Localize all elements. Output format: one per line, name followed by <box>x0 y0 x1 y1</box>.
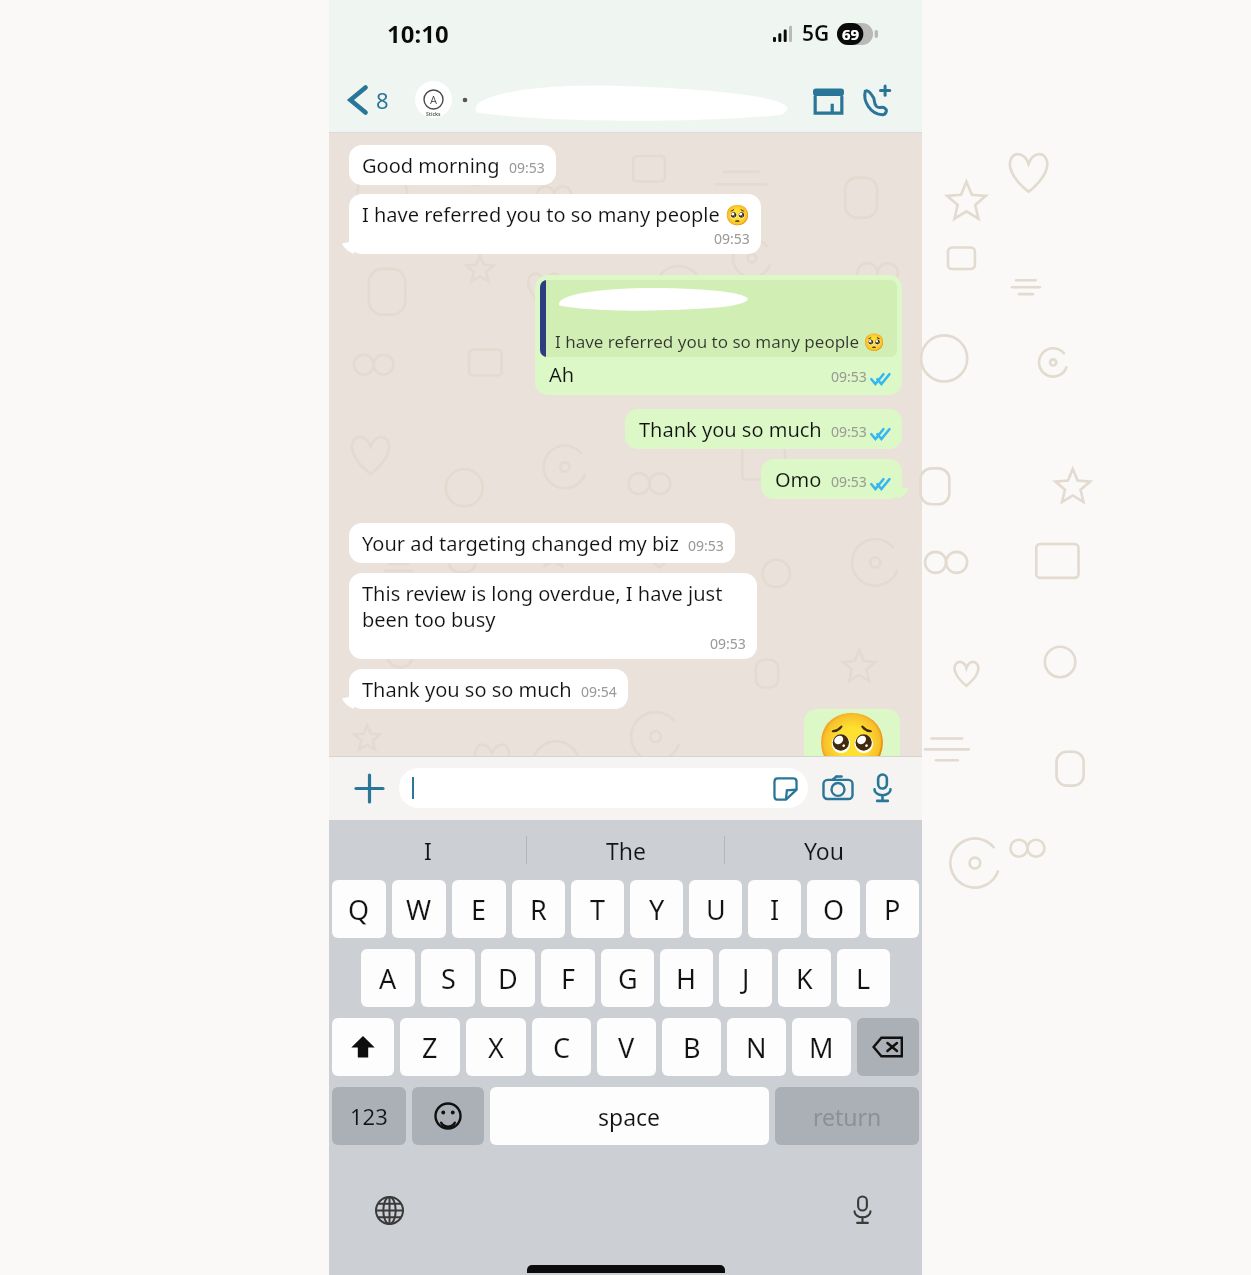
button[interactable]: F <box>541 949 595 1007</box>
button[interactable]: Attach <box>347 766 391 810</box>
button[interactable]: Thank you so much <box>625 409 902 449</box>
staticText: Ah <box>549 361 575 388</box>
button[interactable]: I have referred you to so many people 🥺 <box>535 275 902 395</box>
button[interactable]: D <box>481 949 535 1007</box>
button[interactable]: A <box>361 949 415 1007</box>
staticText: X <box>488 1029 504 1066</box>
staticText: 8 <box>376 85 389 115</box>
staticText: Good morning <box>362 152 500 179</box>
staticText: P <box>884 891 901 928</box>
button[interactable]: Shift <box>332 1018 394 1076</box>
button[interactable]: N <box>727 1018 786 1076</box>
button[interactable]: Emoji <box>412 1087 484 1145</box>
button[interactable]: Your ad targeting changed my biz <box>349 523 735 563</box>
staticText: 10:10 <box>387 17 449 50</box>
staticText: Sticks <box>426 111 441 118</box>
staticText: Q <box>348 891 370 928</box>
staticText: 09:53 <box>710 634 746 653</box>
button[interactable]: Stickers <box>399 768 808 808</box>
button[interactable]: Contact avatar <box>415 81 452 118</box>
staticText: space <box>598 1101 661 1132</box>
button[interactable]: space <box>490 1087 769 1145</box>
staticText: You <box>804 835 844 866</box>
staticText: Thank you so much <box>639 416 822 443</box>
button[interactable]: This review is long overdue, I have just… <box>349 573 757 659</box>
staticText: J <box>742 960 750 997</box>
button[interactable]: Back, 8 unread <box>343 79 395 121</box>
staticText: L <box>856 960 871 997</box>
staticText: N <box>746 1029 767 1066</box>
staticText: 123 <box>350 1101 388 1131</box>
button[interactable]: V <box>597 1018 656 1076</box>
staticText: M <box>809 1029 834 1066</box>
staticText: I have referred you to so many people 🥺 <box>555 330 885 353</box>
staticText: 69 <box>842 24 860 44</box>
button[interactable]: Z <box>400 1018 460 1076</box>
staticText: H <box>676 960 697 997</box>
button[interactable]: J <box>719 949 772 1007</box>
staticText: E <box>471 891 487 928</box>
button[interactable]: K <box>778 949 831 1007</box>
button[interactable]: T <box>571 880 624 938</box>
staticText: I <box>424 835 432 866</box>
button[interactable]: X <box>466 1018 526 1076</box>
staticText: D <box>498 960 518 997</box>
button[interactable]: O <box>807 880 860 938</box>
staticText: Z <box>422 1029 438 1066</box>
staticText: O <box>823 891 845 928</box>
button[interactable]: Camera <box>816 766 860 810</box>
staticText: R <box>530 891 547 928</box>
button[interactable]: 🥺 <box>804 709 900 756</box>
button[interactable]: C <box>532 1018 591 1076</box>
staticText: I have referred you to so many people 🥺 <box>362 201 750 228</box>
button[interactable]: E <box>452 880 506 938</box>
button[interactable]: You <box>725 820 922 880</box>
button[interactable]: I <box>329 820 526 880</box>
button[interactable]: W <box>392 880 446 938</box>
button[interactable]: Dictate <box>840 1188 884 1232</box>
button[interactable]: Stickers <box>768 771 802 805</box>
staticText: 09:54 <box>581 682 617 701</box>
staticText: I <box>770 891 780 928</box>
button[interactable]: The <box>527 820 724 880</box>
staticText: G <box>618 960 638 997</box>
button[interactable]: Voice message <box>860 766 904 810</box>
staticText: F <box>561 960 576 997</box>
button[interactable]: G <box>601 949 654 1007</box>
button[interactable]: U <box>689 880 742 938</box>
staticText: Y <box>649 891 665 928</box>
staticText: B <box>683 1029 701 1066</box>
button[interactable]: B <box>662 1018 721 1076</box>
button[interactable]: return <box>775 1087 919 1145</box>
button[interactable]: Omo <box>761 459 902 499</box>
button[interactable]: New call <box>856 78 900 122</box>
staticText: 09:53 <box>831 472 867 491</box>
button[interactable]: L <box>837 949 890 1007</box>
button[interactable]: P <box>866 880 919 938</box>
button[interactable]: S <box>421 949 475 1007</box>
button[interactable]: Business catalog <box>806 78 850 122</box>
button[interactable]: M <box>792 1018 851 1076</box>
button[interactable]: Good morning <box>349 145 556 185</box>
staticText: K <box>796 960 813 997</box>
staticText: T <box>590 891 606 928</box>
staticText: A <box>379 960 397 997</box>
button[interactable]: Y <box>630 880 683 938</box>
staticText: S <box>441 960 456 997</box>
button[interactable]: Contact name <box>458 79 806 121</box>
staticText: Thank you so so much <box>362 676 572 703</box>
staticText: This review is long overdue, I have just… <box>362 580 746 633</box>
staticText: W <box>406 891 432 928</box>
staticText: 09:53 <box>831 422 867 441</box>
button[interactable]: Q <box>332 880 386 938</box>
button[interactable]: Thank you so so much <box>349 669 628 709</box>
button[interactable]: R <box>512 880 565 938</box>
button[interactable]: Change keyboard <box>367 1188 411 1232</box>
button[interactable]: I <box>748 880 801 938</box>
staticText: C <box>553 1029 571 1066</box>
button[interactable]: 123 <box>332 1087 406 1145</box>
button[interactable]: Backspace <box>857 1018 919 1076</box>
button[interactable]: H <box>660 949 713 1007</box>
button[interactable]: I have referred you to so many people 🥺 <box>349 194 761 254</box>
staticText: U <box>706 891 726 928</box>
